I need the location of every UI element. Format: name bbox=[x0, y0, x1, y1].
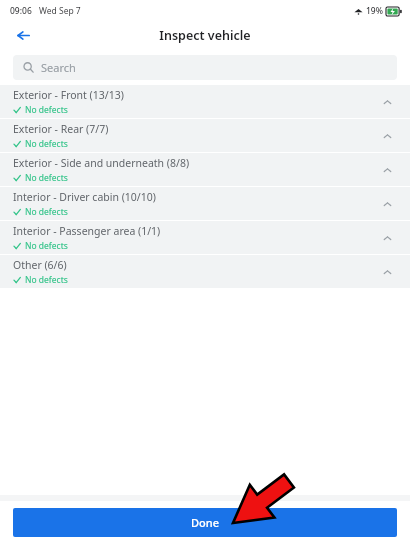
button[interactable]: Collapse section bbox=[377, 92, 397, 112]
staticText: Other (6/6) bbox=[13, 258, 67, 272]
button[interactable]: Interior - Passenger area (1/1) bbox=[0, 221, 410, 254]
button[interactable]: Other (6/6) bbox=[0, 255, 410, 288]
staticText: Exterior - Side and underneath (8/8) bbox=[13, 156, 190, 170]
staticText: 09:06 bbox=[10, 5, 32, 17]
staticText: Search bbox=[41, 60, 76, 75]
button[interactable]: Done bbox=[13, 508, 397, 537]
staticText: 19% bbox=[366, 5, 383, 17]
button[interactable]: Exterior - Side and underneath (8/8) bbox=[0, 153, 410, 186]
staticText: Exterior - Front (13/13) bbox=[13, 88, 124, 102]
button[interactable]: Collapse section bbox=[377, 126, 397, 146]
staticText: No defects bbox=[25, 206, 68, 218]
staticText: Exterior - Rear (7/7) bbox=[13, 122, 109, 136]
staticText: Interior - Passenger area (1/1) bbox=[13, 224, 161, 238]
staticText: No defects bbox=[25, 172, 68, 184]
staticText: Wed Sep 7 bbox=[39, 5, 81, 17]
button[interactable]: Back bbox=[10, 22, 36, 48]
button[interactable]: Exterior - Rear (7/7) bbox=[0, 119, 410, 152]
button[interactable]: Interior - Driver cabin (10/10) bbox=[0, 187, 410, 220]
button[interactable]: Collapse section bbox=[377, 194, 397, 214]
staticText: Interior - Driver cabin (10/10) bbox=[13, 190, 156, 204]
staticText: Done bbox=[191, 515, 219, 530]
staticText: Inspect vehicle bbox=[159, 27, 251, 44]
staticText: No defects bbox=[25, 138, 68, 150]
staticText: No defects bbox=[25, 274, 68, 286]
button[interactable]: Exterior - Front (13/13) bbox=[0, 85, 410, 118]
button[interactable]: Collapse section bbox=[377, 228, 397, 248]
staticText: No defects bbox=[25, 104, 68, 116]
button[interactable]: Collapse section bbox=[377, 160, 397, 180]
staticText: No defects bbox=[25, 240, 68, 252]
button[interactable]: Collapse section bbox=[377, 262, 397, 282]
button[interactable]: Search bbox=[13, 55, 397, 80]
